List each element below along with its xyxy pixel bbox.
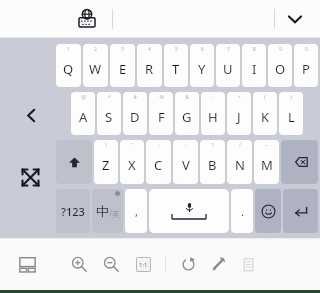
- staticText: 0: [305, 46, 308, 53]
- staticText: R: [145, 60, 154, 78]
- staticText: Q: [63, 60, 74, 78]
- button[interactable]: ?123: [56, 189, 90, 233]
- button[interactable]: +: [227, 92, 251, 135]
- button[interactable]: Back: [18, 102, 44, 128]
- button[interactable]: ,: [125, 189, 147, 233]
- staticText: L: [288, 108, 295, 126]
- button[interactable]: ~: [254, 140, 279, 184]
- staticText: I: [252, 60, 257, 78]
- button[interactable]: ?: [200, 140, 225, 184]
- staticText: M: [261, 156, 273, 174]
- button[interactable]: Split view: [13, 250, 41, 278]
- button[interactable]: Zoom in: [66, 251, 92, 277]
- staticText: 2: [94, 46, 97, 53]
- staticText: 5: [175, 46, 178, 53]
- staticText: B: [208, 156, 217, 174]
- staticText: ~: [265, 142, 268, 149]
- staticText: Z: [102, 156, 110, 174]
- staticText: ): [290, 94, 292, 101]
- staticText: %: [159, 94, 164, 101]
- button[interactable]: Backspace: [281, 140, 318, 184]
- button[interactable]: Annotate: [205, 251, 231, 277]
- button[interactable]: Resize keyboard: [16, 163, 44, 191]
- staticText: 3: [121, 46, 124, 53]
- staticText: H: [208, 108, 218, 126]
- button[interactable]: Space: [149, 189, 229, 233]
- button[interactable]: ;: [173, 140, 198, 184]
- button[interactable]: !: [94, 140, 118, 184]
- button[interactable]: 8: [242, 44, 266, 87]
- staticText: P: [302, 60, 310, 78]
- button[interactable]: Zoom out: [98, 251, 124, 277]
- staticText: -: [212, 94, 214, 101]
- staticText: !: [105, 142, 107, 149]
- button[interactable]: 5: [164, 44, 188, 87]
- staticText: S: [105, 108, 113, 126]
- staticText: ,: [135, 204, 138, 219]
- button[interactable]: %: [149, 92, 173, 135]
- button[interactable]: 9: [268, 44, 292, 87]
- button[interactable]: &: [175, 92, 199, 135]
- staticText: 中: [96, 203, 109, 219]
- staticText: D: [130, 108, 140, 126]
- staticText: E: [119, 60, 127, 78]
- staticText: A: [79, 108, 88, 126]
- button[interactable]: 1: [56, 44, 81, 87]
- staticText: 1:1: [139, 261, 148, 269]
- button[interactable]: :: [146, 140, 171, 184]
- staticText: T: [172, 60, 180, 78]
- button[interactable]: Switch input language: [72, 4, 102, 34]
- button[interactable]: Enter: [283, 189, 318, 233]
- button[interactable]: 7: [216, 44, 240, 87]
- staticText: Y: [198, 60, 206, 78]
- staticText: /英: [109, 208, 120, 219]
- button[interactable]: #: [123, 92, 147, 135]
- button[interactable]: Rotate: [175, 251, 201, 277]
- staticText: 1: [67, 46, 70, 53]
- button[interactable]: Clipboard: [235, 251, 261, 277]
- staticText: &: [185, 94, 189, 101]
- staticText: +: [238, 94, 241, 101]
- button[interactable]: 中: [92, 189, 123, 233]
- button[interactable]: Hide keyboard: [280, 4, 310, 34]
- button[interactable]: Emoji: [255, 189, 281, 233]
- button[interactable]: /: [227, 140, 252, 184]
- staticText: O: [275, 60, 286, 78]
- staticText: 4: [148, 46, 151, 53]
- button[interactable]: ): [279, 92, 303, 135]
- staticText: /: [239, 142, 241, 149]
- staticText: @: [81, 94, 86, 101]
- staticText: ?: [211, 142, 214, 149]
- staticText: W: [89, 60, 102, 78]
- button[interactable]: *: [97, 92, 121, 135]
- staticText: C: [154, 156, 163, 174]
- button[interactable]: Actual size: [130, 251, 156, 277]
- button[interactable]: ": [120, 140, 144, 184]
- button[interactable]: 4: [137, 44, 162, 87]
- staticText: ;: [185, 142, 187, 149]
- staticText: ?123: [61, 204, 85, 219]
- button[interactable]: @: [71, 92, 95, 135]
- staticText: K: [261, 108, 270, 126]
- button[interactable]: (: [253, 92, 277, 135]
- button[interactable]: Shift: [56, 140, 92, 184]
- staticText: N: [235, 156, 245, 174]
- staticText: (: [264, 94, 266, 101]
- staticText: .: [241, 204, 244, 219]
- button[interactable]: 6: [190, 44, 214, 87]
- button[interactable]: 3: [110, 44, 135, 87]
- button[interactable]: 2: [83, 44, 108, 87]
- staticText: :: [158, 142, 160, 149]
- staticText: 9: [279, 46, 282, 53]
- staticText: V: [182, 156, 190, 174]
- button[interactable]: 0: [294, 44, 318, 87]
- staticText: G: [182, 108, 192, 126]
- staticText: ": [131, 142, 134, 149]
- button[interactable]: -: [201, 92, 225, 135]
- staticText: F: [158, 108, 165, 126]
- staticText: #: [133, 94, 137, 101]
- button[interactable]: .: [231, 189, 253, 233]
- staticText: U: [223, 60, 233, 78]
- staticText: 7: [227, 46, 230, 53]
- staticText: 6: [201, 46, 204, 53]
